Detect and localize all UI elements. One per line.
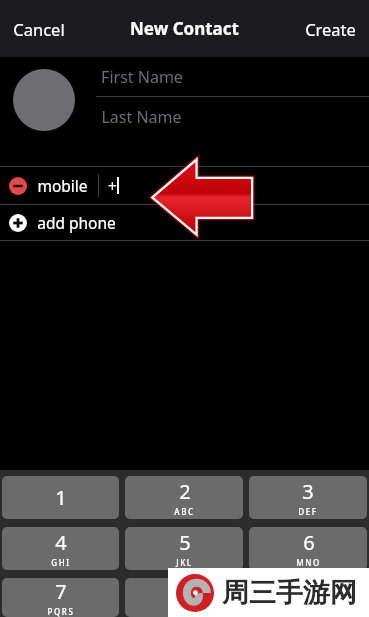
staticText: First Name: [101, 66, 183, 88]
staticText: add phone: [37, 212, 116, 233]
staticText: DEF: [298, 506, 318, 517]
staticText: 9: [303, 578, 315, 605]
button[interactable]: 2: [125, 476, 243, 519]
button[interactable]: 1: [2, 476, 119, 519]
button[interactable]: Add contact photo: [13, 69, 75, 131]
staticText: New Contact: [130, 17, 239, 40]
staticText: 2: [179, 478, 191, 505]
button[interactable]: Cancel: [4, 12, 74, 46]
button[interactable]: First Name: [0, 57, 369, 96]
staticText: 5: [179, 529, 191, 556]
staticText: JKL: [176, 557, 193, 568]
staticText: MNO: [296, 557, 321, 568]
button[interactable]: 9: [249, 578, 367, 617]
staticText: +: [108, 175, 117, 196]
staticText: mobile: [37, 175, 88, 196]
button[interactable]: 6: [249, 527, 367, 570]
button[interactable]: 5: [125, 527, 243, 570]
staticText: TUV: [174, 606, 195, 617]
staticText: 周三手游网: [222, 576, 357, 610]
staticText: 4: [55, 529, 67, 556]
button[interactable]: 3: [249, 476, 367, 519]
button[interactable]: Create: [296, 12, 365, 46]
button[interactable]: Last Name: [0, 97, 369, 136]
staticText: 3: [302, 478, 314, 505]
button[interactable]: add phone: [0, 205, 369, 240]
button[interactable]: Remove phone: [0, 167, 369, 204]
staticText: ABC: [174, 506, 195, 517]
staticText: 1: [55, 484, 67, 511]
staticText: Cancel: [13, 18, 65, 40]
other: Arrow pointing to phone number field: [152, 159, 253, 233]
staticText: GHI: [51, 557, 71, 568]
staticText: 7: [55, 578, 67, 605]
button[interactable]: 7: [2, 578, 119, 617]
button[interactable]: 8: [125, 578, 243, 617]
staticText: 8: [179, 578, 191, 605]
staticText: Last Name: [101, 106, 182, 128]
button[interactable]: 4: [2, 527, 119, 570]
button[interactable]: Remove phone: [9, 177, 27, 195]
staticText: PQRS: [47, 606, 75, 617]
staticText: Create: [305, 18, 356, 40]
staticText: 6: [303, 529, 315, 556]
